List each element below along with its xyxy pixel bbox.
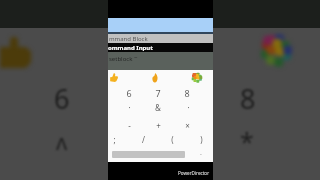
staticText: ommand Input: [108, 44, 153, 52]
button[interactable]: ommand Input: [108, 43, 213, 52]
button[interactable]: (: [158, 132, 186, 146]
button[interactable]: setblock: [108, 52, 213, 70]
staticText: ): [200, 134, 203, 145]
button[interactable]: -: [115, 118, 143, 132]
staticText: ;: [113, 134, 116, 145]
staticText: setblock: [109, 55, 133, 63]
button[interactable]: +: [144, 118, 172, 132]
button[interactable]: Emoji suggestion: [98, 70, 130, 85]
button[interactable]: ;: [100, 132, 128, 146]
staticText: (: [171, 134, 174, 145]
staticText: *: [240, 124, 254, 158]
button[interactable]: ·: [174, 100, 202, 114]
button[interactable]: ·: [115, 100, 143, 114]
button[interactable]: ×: [173, 118, 201, 132]
staticText: +: [156, 120, 161, 131]
button[interactable]: &: [144, 100, 172, 114]
button[interactable]: Emoji suggestion: [181, 70, 213, 85]
staticText: ʌ: [56, 126, 68, 156]
staticText: .: [200, 148, 202, 158]
staticText: &: [155, 102, 161, 113]
staticText: /: [142, 134, 145, 145]
staticText: PowerDirector: [178, 170, 210, 176]
staticText: ×: [185, 120, 190, 131]
staticText: mmand Block: [109, 35, 148, 43]
staticText: 7: [155, 87, 161, 99]
staticText: 8: [240, 80, 256, 117]
button[interactable]: 6: [115, 86, 143, 100]
staticText: 8: [184, 87, 190, 99]
button[interactable]: /: [129, 132, 157, 146]
button[interactable]: 8: [173, 86, 201, 100]
button[interactable]: Emoji suggestion: [139, 70, 171, 85]
staticText: ·: [128, 102, 131, 113]
staticText: ~: [134, 53, 138, 61]
button[interactable]: 7: [144, 86, 172, 100]
staticText: -: [128, 120, 131, 131]
staticText: ·: [187, 102, 190, 113]
button[interactable]: ): [187, 132, 215, 146]
staticText: 6: [126, 87, 132, 99]
staticText: 6: [54, 80, 70, 117]
